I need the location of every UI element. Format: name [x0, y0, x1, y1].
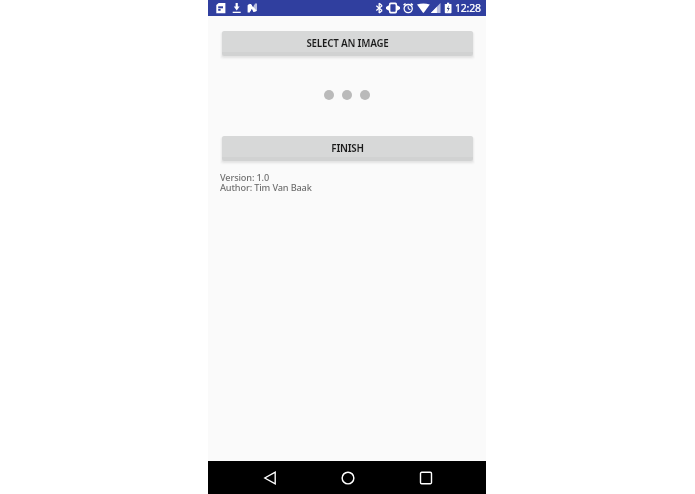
- staticText: Version: 1.0 Author: Tim Van Baak: [220, 171, 312, 193]
- staticText: FINISH: [331, 142, 364, 155]
- button[interactable]: Home: [334, 464, 362, 492]
- staticText: SELECT AN IMAGE: [306, 37, 389, 50]
- staticText: 12:28: [455, 1, 481, 15]
- button[interactable]: Back: [256, 464, 284, 492]
- button[interactable]: SELECT AN IMAGE: [222, 31, 473, 56]
- button[interactable]: Recents: [412, 464, 440, 492]
- button[interactable]: FINISH: [222, 136, 473, 161]
